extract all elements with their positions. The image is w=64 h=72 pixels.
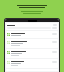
- button[interactable]: Item icon: [6, 50, 58, 57]
- button[interactable]: Item icon: [6, 60, 58, 67]
- other: Item icon: [7, 33, 10, 36]
- button[interactable]: Item icon: [6, 40, 58, 47]
- other: Item icon: [7, 61, 10, 64]
- button[interactable]: Item icon: [6, 32, 58, 37]
- other: Item icon: [7, 51, 10, 54]
- other: Item icon: [7, 41, 10, 44]
